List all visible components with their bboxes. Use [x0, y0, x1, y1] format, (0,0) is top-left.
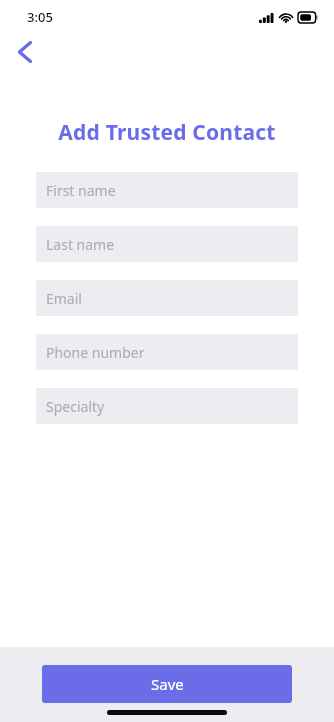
staticText: Last name: [46, 235, 115, 254]
staticText: Save: [151, 674, 184, 694]
button[interactable]: Phone number: [36, 334, 298, 370]
staticText: Specialty: [46, 397, 105, 416]
button[interactable]: Last name: [36, 226, 298, 262]
button[interactable]: Specialty: [36, 388, 298, 424]
staticText: 3:05: [27, 8, 53, 26]
staticText: Phone number: [46, 343, 145, 362]
button[interactable]: Email: [36, 280, 298, 316]
staticText: Email: [46, 289, 82, 308]
button[interactable]: Back: [8, 36, 40, 68]
staticText: First name: [46, 181, 116, 200]
staticText: Add Trusted Contact: [0, 118, 334, 147]
button[interactable]: First name: [36, 172, 298, 208]
button[interactable]: Save: [42, 665, 292, 703]
